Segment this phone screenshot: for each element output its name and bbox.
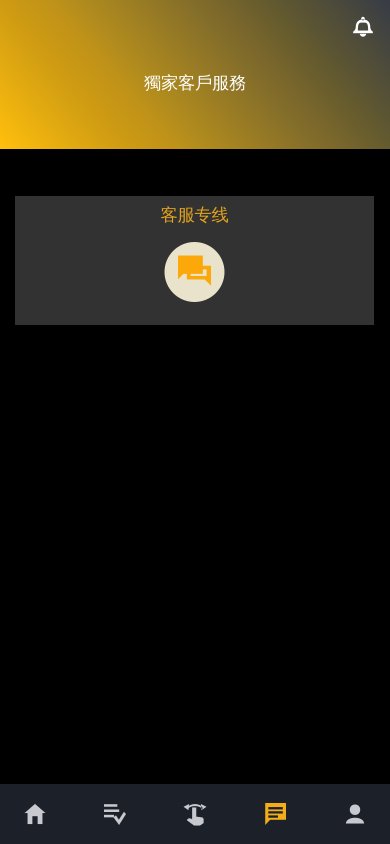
- staticText: 獨家客戶服務: [144, 72, 246, 94]
- staticText: 客服专线: [160, 204, 228, 226]
- button[interactable]: Notifications: [341, 5, 385, 49]
- button[interactable]: Profile: [315, 784, 390, 844]
- button[interactable]: Home: [0, 784, 75, 844]
- button[interactable]: 客服专线: [15, 196, 374, 325]
- button[interactable]: Orders: [75, 784, 155, 844]
- button[interactable]: Gestures: [155, 784, 235, 844]
- button[interactable]: Messages: [235, 784, 315, 844]
